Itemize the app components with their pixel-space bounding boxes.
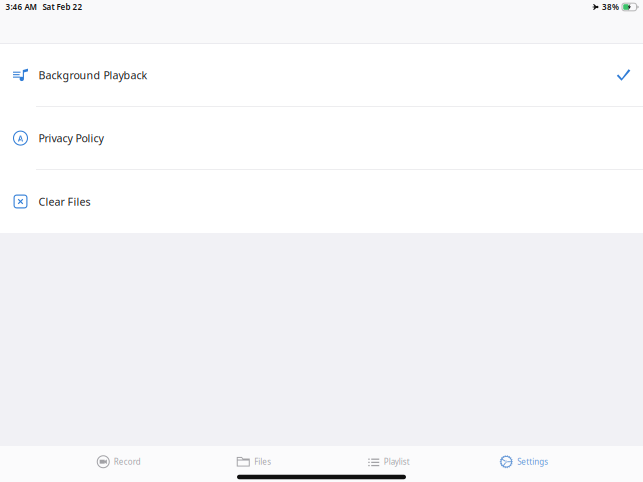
button[interactable]: Privacy Policy <box>0 107 643 170</box>
button[interactable]: Record <box>51 449 186 475</box>
staticText: Playlist <box>384 456 410 467</box>
button[interactable]: Background Playback <box>0 44 643 107</box>
staticText: Clear Files <box>38 194 90 209</box>
staticText: Privacy Policy <box>38 131 103 145</box>
staticText: Background Playback <box>38 68 147 82</box>
button[interactable]: Settings <box>456 449 591 475</box>
staticText: Record <box>114 456 141 467</box>
staticText: Settings <box>517 456 548 467</box>
staticText: Files <box>254 456 271 467</box>
staticText: Sat Feb 22 <box>42 2 82 12</box>
button[interactable]: Clear Files <box>0 170 643 233</box>
staticText: 38% <box>602 2 619 12</box>
staticText: 3:46 AM <box>5 2 36 12</box>
button[interactable]: Files <box>186 449 321 475</box>
button[interactable]: Playlist <box>321 449 456 475</box>
